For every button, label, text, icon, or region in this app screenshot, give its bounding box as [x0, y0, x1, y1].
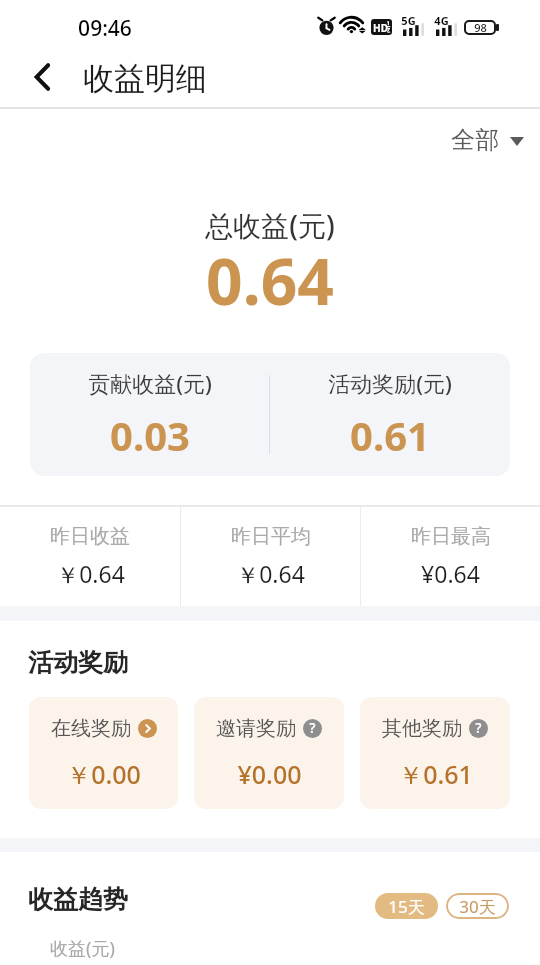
staticText: 09:46: [78, 14, 132, 43]
staticText: 0.64: [206, 237, 334, 324]
button[interactable]: 全部: [451, 125, 524, 155]
staticText: 其他奖励: [382, 716, 462, 741]
staticText: 0.03: [110, 408, 190, 462]
staticText: 全部: [451, 125, 499, 155]
button[interactable]: 邀请奖励: [194, 697, 344, 809]
staticText: HD: [373, 21, 388, 35]
staticText: ￥0.64: [56, 558, 125, 589]
staticText: 30天: [459, 895, 496, 918]
staticText: 15天: [388, 895, 425, 918]
staticText: 昨日最高: [411, 524, 491, 549]
button[interactable]: Back: [18, 53, 66, 101]
button[interactable]: 昨日最高: [361, 507, 540, 606]
button[interactable]: 30天: [446, 893, 509, 919]
staticText: ¥0.64: [421, 558, 480, 589]
button[interactable]: 昨日收益: [0, 507, 180, 606]
staticText: 4G: [434, 13, 449, 28]
staticText: 0.61: [350, 408, 430, 462]
staticText: 5G: [401, 13, 416, 28]
staticText: 在线奖励: [51, 716, 131, 741]
staticText: 收益明细: [83, 59, 207, 98]
staticText: ?: [309, 718, 316, 737]
button[interactable]: 活动奖励(元): [270, 353, 510, 476]
staticText: 活动奖励: [28, 647, 128, 678]
button[interactable]: 在线奖励: [29, 697, 178, 809]
staticText: ¥0.00: [237, 757, 302, 791]
staticText: 收益趋势: [28, 884, 128, 915]
button[interactable]: 昨日平均: [181, 507, 360, 606]
button[interactable]: 15天: [375, 893, 438, 919]
staticText: 邀请奖励: [216, 716, 296, 741]
button[interactable]: 贡献收益(元): [30, 353, 269, 476]
staticText: ￥0.64: [236, 558, 305, 589]
staticText: ￥0.61: [398, 757, 473, 791]
staticText: ￥0.00: [66, 757, 141, 791]
staticText: 总收益(元): [205, 206, 335, 244]
staticText: 昨日平均: [231, 524, 311, 549]
staticText: 活动奖励(元): [328, 368, 452, 398]
staticText: 贡献收益(元): [88, 368, 212, 398]
staticText: 98: [474, 20, 487, 35]
staticText: 收益(元): [50, 936, 115, 961]
staticText: 昨日收益: [50, 524, 130, 549]
staticText: ?: [475, 718, 482, 737]
button[interactable]: 其他奖励: [360, 697, 510, 809]
